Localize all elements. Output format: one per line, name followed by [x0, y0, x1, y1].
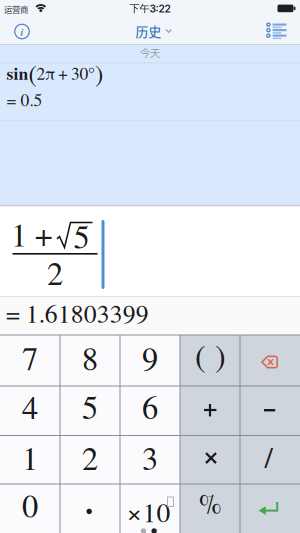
staticText: 2: [47, 251, 63, 294]
staticText: 8: [82, 336, 98, 379]
button[interactable]: 5: [61, 383, 119, 430]
button[interactable]: 8: [61, 334, 119, 381]
staticText: +: [34, 212, 52, 255]
button[interactable]: 3: [121, 434, 179, 481]
staticText: = 1.61803399: [6, 296, 149, 330]
button[interactable]: 历史: [135, 16, 172, 46]
staticText: = 0.5: [6, 88, 42, 111]
staticText: 7: [22, 336, 38, 379]
staticText: ): [95, 56, 103, 90]
staticText: 今天: [140, 45, 160, 60]
button[interactable]: /: [239, 433, 297, 480]
button[interactable]: [61, 484, 119, 531]
button[interactable]: %: [181, 479, 239, 526]
staticText: 下午3:22: [129, 2, 170, 15]
button[interactable]: 6: [121, 383, 179, 430]
staticText: 5: [73, 214, 89, 258]
button[interactable]: [241, 387, 299, 434]
button[interactable]: sin: [0, 63, 300, 120]
staticText: 运营商: [4, 3, 28, 15]
staticText: 1: [11, 212, 27, 256]
button[interactable]: [181, 387, 239, 434]
button[interactable]: (: [181, 337, 239, 384]
button[interactable]: 2: [61, 434, 119, 481]
button[interactable]: [241, 485, 299, 532]
staticText: 9: [142, 336, 158, 379]
staticText: 3: [142, 436, 158, 479]
staticText: /: [264, 436, 272, 477]
staticText: 2π + 30°: [36, 61, 95, 85]
staticText: 4: [22, 385, 38, 428]
staticText: (: [28, 56, 36, 90]
staticText: 1: [22, 436, 38, 479]
button[interactable]: ×10: [120, 485, 178, 532]
staticText: %: [198, 484, 221, 522]
button[interactable]: 9: [121, 334, 179, 381]
button[interactable]: 0: [1, 481, 59, 528]
button[interactable]: [241, 337, 299, 384]
button[interactable]: 1: [1, 434, 59, 481]
button[interactable]: [265, 22, 287, 40]
staticText: 5: [82, 385, 98, 428]
staticText: ×10: [126, 493, 170, 530]
staticText: i: [20, 24, 23, 39]
button[interactable]: 7: [1, 334, 59, 381]
staticText: sin: [6, 60, 28, 86]
staticText: 6: [142, 385, 158, 428]
staticText: 0: [22, 483, 38, 526]
staticText: 历史: [135, 22, 161, 40]
staticText: (: [195, 333, 206, 376]
staticText: 2: [82, 436, 98, 479]
button[interactable]: i: [8, 17, 36, 45]
button[interactable]: [181, 436, 239, 483]
button[interactable]: 4: [1, 383, 59, 430]
staticText: ): [215, 333, 226, 376]
